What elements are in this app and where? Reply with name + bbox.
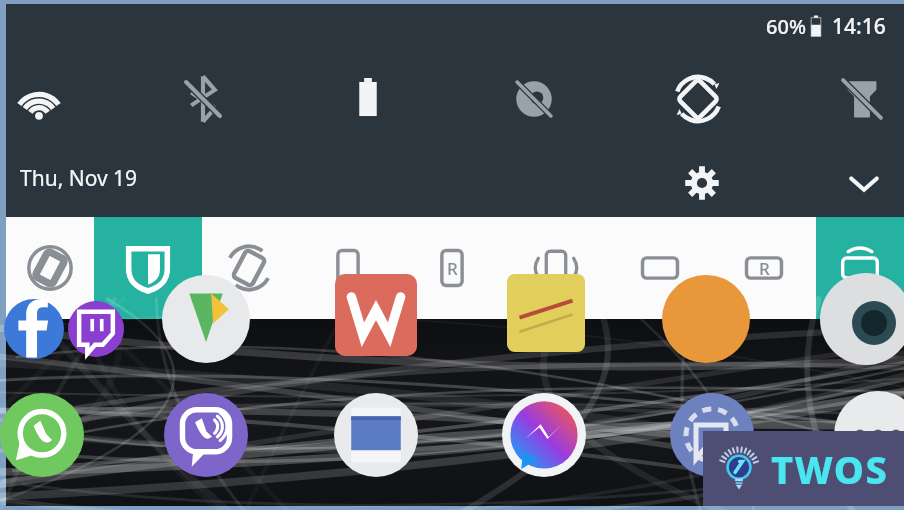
button[interactable]: Portrait reverse	[400, 217, 504, 319]
staticText: 14:16	[832, 12, 886, 41]
staticText: R	[447, 257, 458, 280]
staticText: 60%	[766, 13, 806, 40]
button[interactable]: Portrait	[296, 217, 400, 319]
button[interactable]: Auto rotate locked	[6, 217, 94, 319]
button[interactable]: Landscape rotate	[816, 217, 904, 319]
button[interactable]: Settings	[678, 159, 726, 207]
button[interactable]: Rotate	[202, 217, 296, 319]
button[interactable]: Protection	[94, 217, 202, 319]
button[interactable]: Vibrate	[504, 217, 608, 319]
staticText: Thu, Nov 19	[20, 164, 138, 193]
button[interactable]: Expand	[840, 159, 888, 207]
staticText: TWOS	[771, 443, 889, 495]
staticText: R	[759, 257, 770, 280]
button[interactable]: Landscape reverse	[712, 217, 816, 319]
button[interactable]: Landscape	[608, 217, 712, 319]
